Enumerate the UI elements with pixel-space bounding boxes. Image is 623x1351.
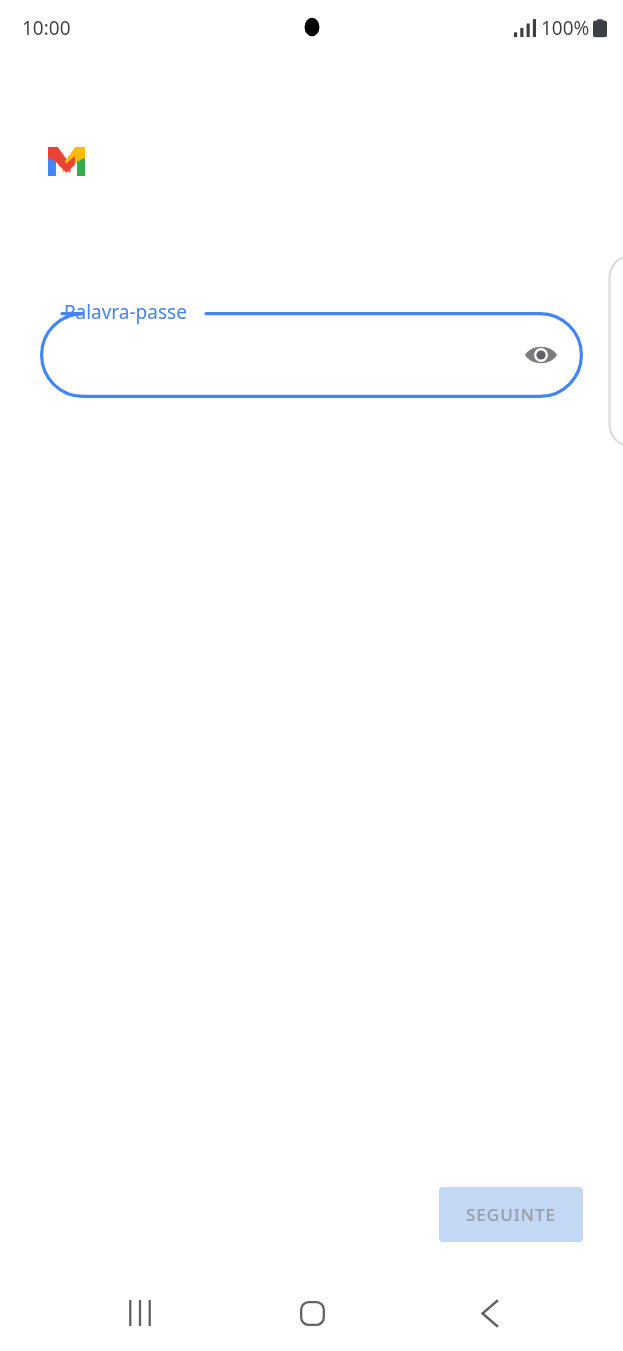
button[interactable]: Recentes — [116, 1289, 164, 1337]
button[interactable]: Início — [288, 1289, 336, 1337]
button[interactable]: SEGUINTE — [439, 1187, 583, 1242]
staticText: Palavra-passe — [64, 299, 187, 325]
staticText: 100% — [541, 15, 590, 41]
staticText: 10:00 — [22, 15, 71, 41]
button[interactable]: Mostrar palavra-passe — [517, 331, 565, 379]
staticText: SEGUINTE — [466, 1203, 556, 1226]
button[interactable]: Palavra-passe — [40, 312, 583, 398]
button[interactable]: Voltar — [465, 1289, 513, 1337]
